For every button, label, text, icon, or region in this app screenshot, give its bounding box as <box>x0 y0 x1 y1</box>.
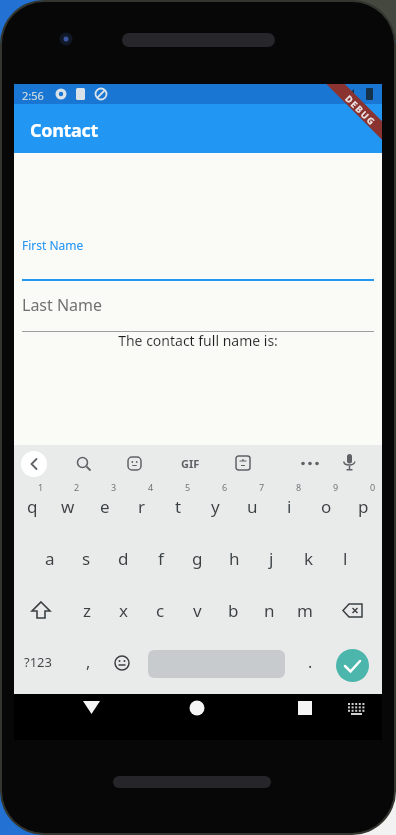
staticText: 2:56 <box>22 88 44 103</box>
button[interactable]: c <box>142 584 179 637</box>
button[interactable]: r <box>123 480 160 533</box>
button[interactable]: u <box>234 480 271 533</box>
staticText: 5 <box>185 481 191 493</box>
button[interactable] <box>76 456 92 472</box>
staticText: a <box>45 547 55 570</box>
button[interactable]: e <box>86 480 123 533</box>
button[interactable]: b <box>215 584 251 637</box>
staticText: y <box>211 495 220 518</box>
staticText: l <box>343 547 348 570</box>
button[interactable]: o <box>308 480 345 533</box>
staticText: p <box>358 495 369 518</box>
button[interactable]: z <box>68 584 105 637</box>
button[interactable]: n <box>251 584 287 637</box>
button[interactable]: w <box>50 480 86 533</box>
staticText: t <box>175 495 182 518</box>
button[interactable] <box>14 584 68 637</box>
button[interactable]: h <box>216 532 253 585</box>
staticText: 3 <box>111 481 117 493</box>
button[interactable] <box>128 457 142 471</box>
button[interactable] <box>75 694 109 740</box>
staticText: 7 <box>259 481 265 493</box>
staticText: o <box>321 495 332 518</box>
staticText: 8 <box>296 481 302 493</box>
staticText: j <box>269 547 274 570</box>
button[interactable] <box>21 451 47 477</box>
staticText: r <box>138 495 146 518</box>
staticText: z <box>83 599 91 622</box>
button[interactable]: . <box>292 635 328 689</box>
button[interactable]: v <box>179 584 215 637</box>
staticText: b <box>228 599 239 622</box>
staticText: DEBUG <box>343 92 379 128</box>
button[interactable]: x <box>105 584 142 637</box>
staticText: , <box>86 651 91 673</box>
button[interactable]: ?123 <box>14 635 62 689</box>
staticText: GIF <box>181 456 200 471</box>
button[interactable] <box>343 454 356 473</box>
staticText: f <box>158 547 164 570</box>
staticText: v <box>193 599 202 622</box>
staticText: First Name <box>22 237 84 253</box>
staticText: e <box>100 495 110 518</box>
staticText: Last Name <box>22 294 103 316</box>
staticText: k <box>304 547 314 570</box>
button[interactable] <box>323 584 382 637</box>
staticText: 6 <box>222 481 228 493</box>
button[interactable] <box>284 694 318 740</box>
button[interactable] <box>336 649 369 682</box>
staticText: 4 <box>148 481 154 493</box>
staticText: 0 <box>370 481 376 493</box>
button[interactable]: i <box>271 480 308 533</box>
button[interactable]: s <box>68 532 105 585</box>
button[interactable]: y <box>197 480 234 533</box>
button[interactable]: t <box>160 480 197 533</box>
button[interactable]: , <box>70 635 106 689</box>
staticText: s <box>82 547 91 570</box>
staticText: u <box>247 495 258 518</box>
button[interactable]: q <box>14 480 50 533</box>
staticText: 9 <box>333 481 339 493</box>
staticText: i <box>287 495 292 518</box>
button[interactable]: f <box>142 532 179 585</box>
staticText: 1 <box>38 481 44 493</box>
staticText: ?123 <box>24 653 52 671</box>
button[interactable]: k <box>290 532 327 585</box>
button[interactable]: l <box>327 532 364 585</box>
button[interactable]: p <box>345 480 382 533</box>
button[interactable]: g <box>179 532 216 585</box>
staticText: n <box>264 599 275 622</box>
button[interactable]: a <box>32 532 68 585</box>
button[interactable] <box>300 461 320 466</box>
staticText: x <box>119 599 128 622</box>
staticText: The contact full name is: <box>14 331 382 350</box>
staticText: w <box>61 495 75 518</box>
button[interactable]: m <box>287 584 323 637</box>
staticText: h <box>229 547 240 570</box>
button[interactable] <box>236 456 251 471</box>
button[interactable] <box>180 694 214 740</box>
staticText: g <box>192 547 203 570</box>
staticText: c <box>156 599 165 622</box>
button[interactable]: j <box>253 532 290 585</box>
staticText: d <box>118 547 129 570</box>
staticText: 2 <box>74 481 80 493</box>
staticText: . <box>308 651 313 673</box>
staticText: m <box>297 599 313 622</box>
button[interactable]: d <box>105 532 142 585</box>
staticText: Contact <box>30 118 99 143</box>
staticText: q <box>27 495 38 518</box>
